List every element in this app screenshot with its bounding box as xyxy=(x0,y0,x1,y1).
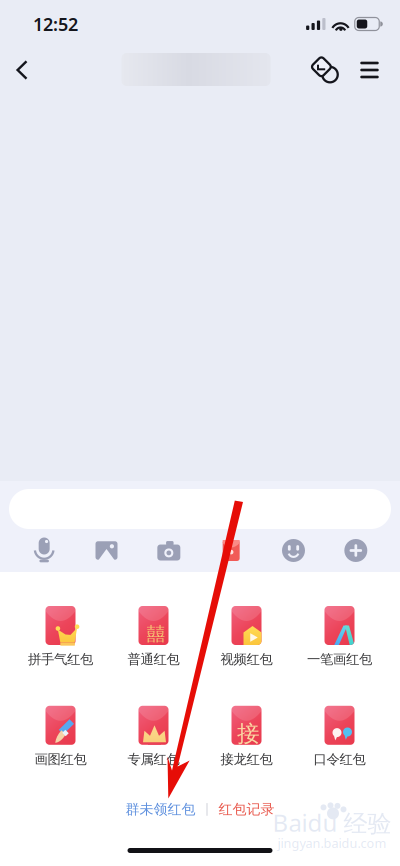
button[interactable]: Red packet history xyxy=(300,48,349,92)
button[interactable]: 口令红包 xyxy=(293,706,386,768)
staticText: 12:52 xyxy=(33,12,78,36)
button[interactable]: Red packet xyxy=(200,529,262,572)
staticText: 拼手气红包 xyxy=(28,651,93,668)
button[interactable]: Emoji xyxy=(262,529,325,572)
staticText: jingyan.baidu.com xyxy=(277,834,386,852)
button[interactable]: Back xyxy=(0,48,44,92)
staticText: 口令红包 xyxy=(313,751,365,768)
button[interactable]: 接 xyxy=(200,706,293,768)
button[interactable]: Voice message xyxy=(13,529,75,572)
button[interactable]: 囍 xyxy=(107,606,200,668)
staticText: 视频红包 xyxy=(220,651,272,668)
button[interactable]: 红包记录 xyxy=(207,795,288,824)
button[interactable]: 视频红包 xyxy=(200,606,293,668)
staticText: 普通红包 xyxy=(127,651,179,668)
staticText: 画图红包 xyxy=(34,751,86,768)
button[interactable]: More xyxy=(325,529,387,572)
staticText: 群未领红包 xyxy=(125,801,195,818)
staticText: 接龙红包 xyxy=(220,751,272,768)
staticText: 红包记录 xyxy=(218,801,274,818)
staticText: 囍 xyxy=(146,622,165,646)
staticText: 一笔画红包 xyxy=(307,651,372,668)
button[interactable]: 群未领红包 xyxy=(111,795,206,824)
button[interactable]: Camera xyxy=(138,529,200,572)
staticText: 专属红包 xyxy=(127,751,179,768)
button[interactable]: 一笔画红包 xyxy=(293,606,386,668)
button[interactable]: Menu xyxy=(349,48,400,92)
staticText: Baidu 经验 xyxy=(272,806,391,839)
button[interactable]: Photos xyxy=(75,529,138,572)
staticText: 接 xyxy=(237,719,260,748)
button[interactable]: 画图红包 xyxy=(14,706,107,768)
button[interactable]: 专属红包 xyxy=(107,706,200,768)
button[interactable]: 拼手气红包 xyxy=(14,606,107,668)
